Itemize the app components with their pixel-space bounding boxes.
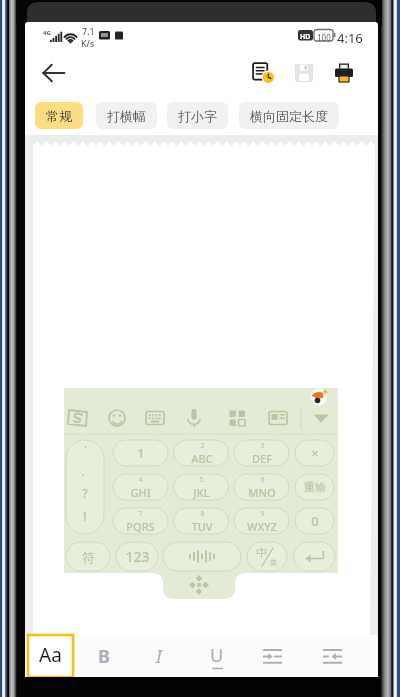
staticText: ': [84, 442, 87, 457]
staticText: 符: [82, 549, 95, 565]
button[interactable]: Increase indent: [251, 635, 293, 677]
staticText: !: [83, 508, 87, 524]
button[interactable]: 符: [66, 542, 110, 571]
button[interactable]: ×: [295, 440, 334, 466]
staticText: 1: [137, 444, 145, 462]
staticText: 打横幅: [107, 108, 146, 124]
button[interactable]: Underline: [196, 635, 238, 677]
staticText: 4: [138, 475, 143, 485]
staticText: 7.1: [82, 25, 95, 37]
staticText: DEF: [252, 451, 272, 466]
button[interactable]: 5: [174, 474, 229, 500]
staticText: 5: [199, 475, 204, 485]
button[interactable]: 打横幅: [96, 102, 157, 129]
staticText: ?: [82, 485, 88, 501]
staticText: HD: [300, 32, 311, 42]
button[interactable]: Back: [35, 55, 71, 91]
staticText: 常规: [46, 108, 72, 124]
staticText: TUV: [191, 519, 213, 534]
button[interactable]: ?: [66, 485, 104, 501]
button[interactable]: Print: [326, 55, 362, 91]
button[interactable]: 2: [174, 440, 229, 466]
staticText: 2: [200, 441, 205, 451]
button[interactable]: 横向固定长度: [239, 102, 339, 129]
button[interactable]: Aa: [28, 635, 73, 677]
staticText: 。: [81, 466, 90, 477]
staticText: 6: [260, 475, 265, 485]
staticText: JKL: [193, 485, 210, 500]
staticText: 重输: [304, 480, 326, 494]
button[interactable]: 7: [113, 508, 168, 534]
staticText: PQRS: [126, 519, 155, 534]
staticText: 0: [311, 512, 319, 530]
staticText: I: [156, 644, 162, 669]
button[interactable]: 中: [247, 542, 287, 571]
staticText: K/s: [81, 37, 95, 49]
button[interactable]: 0: [295, 508, 334, 534]
button[interactable]: 打小字: [167, 102, 228, 129]
staticText: GHI: [130, 485, 151, 500]
staticText: 100: [317, 32, 331, 43]
staticText: WXYZ: [247, 519, 277, 534]
button[interactable]: 9: [234, 508, 289, 534]
button[interactable]: History: [246, 55, 282, 91]
button[interactable]: Bold: [83, 635, 125, 677]
button[interactable]: Italic: [138, 635, 180, 677]
staticText: 中: [256, 545, 268, 560]
button[interactable]: Save: [286, 55, 322, 91]
button[interactable]: 8: [174, 508, 229, 534]
button[interactable]: ': [66, 441, 104, 457]
staticText: Aa: [39, 642, 62, 668]
button[interactable]: 。: [66, 463, 104, 479]
button[interactable]: 123: [116, 542, 158, 571]
staticText: 8: [200, 509, 205, 519]
button[interactable]: 1: [113, 440, 168, 466]
staticText: 横向固定长度: [250, 108, 328, 124]
staticText: 123: [125, 547, 150, 566]
staticText: ABC: [191, 451, 213, 466]
button[interactable]: 重输: [295, 474, 334, 500]
button[interactable]: 4: [113, 474, 168, 500]
staticText: B: [98, 644, 110, 669]
staticText: 4G: [43, 29, 51, 37]
staticText: MNO: [248, 485, 276, 500]
staticText: 4:16: [337, 29, 363, 47]
staticText: 3: [260, 441, 265, 451]
staticText: 7: [138, 509, 143, 519]
button[interactable]: Decrease indent: [311, 635, 353, 677]
staticText: 9: [260, 509, 265, 519]
button[interactable]: 3: [234, 440, 289, 466]
staticText: U: [210, 643, 224, 668]
staticText: ×: [311, 444, 319, 462]
button[interactable]: !: [66, 508, 104, 524]
staticText: 英: [270, 558, 277, 567]
button[interactable]: 6: [234, 474, 289, 500]
button[interactable]: 常规: [35, 102, 83, 129]
staticText: 打小字: [178, 108, 217, 124]
